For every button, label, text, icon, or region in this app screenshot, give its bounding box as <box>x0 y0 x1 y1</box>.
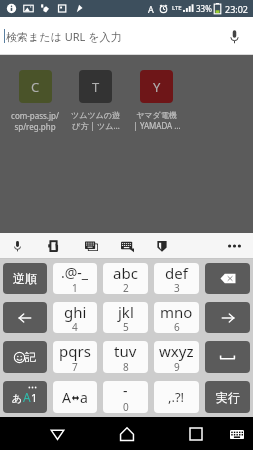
staticText: T <box>92 78 100 96</box>
button[interactable]: pqrs <box>53 341 97 373</box>
button[interactable]: Move cursor right <box>205 302 250 333</box>
button[interactable]: abc <box>103 263 148 294</box>
button[interactable]: Home <box>111 418 143 450</box>
button[interactable]: More options <box>223 235 245 257</box>
button[interactable]: Space <box>205 341 250 373</box>
staticText: pqrs <box>59 341 91 361</box>
button[interactable]: def <box>154 263 199 294</box>
staticText: A <box>23 389 31 405</box>
staticText: def <box>165 263 188 283</box>
staticText: 23:02 <box>225 3 249 15</box>
staticText: 4 <box>72 320 78 333</box>
staticText: あ <box>12 392 23 405</box>
staticText: 記 <box>25 350 36 364</box>
button[interactable]: Recent apps <box>180 418 212 450</box>
button[interactable]: tuv <box>103 341 148 373</box>
button[interactable]: Switch input mode <box>3 381 47 413</box>
button[interactable]: Handwriting input <box>44 236 64 256</box>
staticText: 9 <box>174 360 180 373</box>
staticText: 33% <box>196 3 212 14</box>
staticText: ,.?! <box>168 388 185 406</box>
button[interactable]: ,.?! <box>154 381 199 413</box>
staticText: 5 <box>123 320 129 333</box>
button[interactable]: Toggle uppercase and lowercase <box>53 381 97 413</box>
button[interactable]: Switch keyboard <box>223 420 251 448</box>
button[interactable]: T <box>65 70 126 131</box>
button[interactable]: C <box>5 70 65 132</box>
staticText: - <box>123 381 128 400</box>
staticText: C <box>31 78 40 96</box>
staticText: tuv <box>114 341 137 361</box>
staticText: 2 <box>123 281 129 294</box>
button[interactable]: .@-_ <box>53 263 97 294</box>
staticText: A <box>62 388 71 407</box>
button[interactable]: Voice search <box>219 21 249 51</box>
button[interactable]: Delete <box>205 263 250 294</box>
staticText: ヤマダ電機 <box>136 110 177 120</box>
staticText: 実行 <box>216 390 240 405</box>
staticText: sp/reg.php <box>14 121 56 132</box>
staticText: び方 | ツム… <box>72 120 120 131</box>
staticText: Y <box>153 78 161 96</box>
button[interactable]: Keyboard settings <box>117 236 137 256</box>
staticText: | YAMADA … <box>133 120 181 131</box>
button[interactable]: Back <box>41 418 73 450</box>
button[interactable]: Move cursor left <box>3 302 47 333</box>
staticText: ツムツムの遊 <box>71 110 120 120</box>
button[interactable]: Y <box>126 70 187 131</box>
button[interactable]: Clipboard <box>152 236 172 256</box>
staticText: 0 <box>123 400 129 413</box>
button[interactable]: wxyz <box>154 341 199 373</box>
staticText: mno <box>160 302 193 322</box>
staticText: 6 <box>174 320 180 333</box>
button[interactable]: Choose keyboard <box>81 236 101 256</box>
staticText: 8 <box>123 360 129 373</box>
button[interactable]: mno <box>154 302 199 333</box>
staticText: 1 <box>31 390 38 405</box>
button[interactable]: Voice input <box>7 236 27 256</box>
staticText: a <box>80 388 88 407</box>
button[interactable]: jkl <box>103 302 148 333</box>
button[interactable]: 逆順 <box>3 263 47 294</box>
button[interactable]: - <box>103 381 148 413</box>
staticText: A <box>148 3 154 15</box>
staticText: .@-_ <box>61 263 89 282</box>
staticText: 1 <box>72 281 78 294</box>
staticText: LTE <box>172 4 182 12</box>
staticText: jkl <box>118 302 134 322</box>
button[interactable]: ghi <box>53 302 97 333</box>
staticText: wxyz <box>159 341 194 361</box>
staticText: com-pass.jp/ <box>11 110 59 121</box>
button[interactable]: 実行 <box>205 381 250 413</box>
staticText: 検索または URL を入力 <box>6 29 122 44</box>
staticText: abc <box>113 263 138 283</box>
staticText: ghi <box>64 302 87 322</box>
staticText: 7 <box>72 360 78 373</box>
button[interactable]: Emoji and symbols <box>3 341 47 373</box>
staticText: 3 <box>174 281 180 294</box>
staticText: 逆順 <box>13 271 37 286</box>
